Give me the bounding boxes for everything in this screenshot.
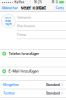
button[interactable]: Nachname (17, 22, 66, 30)
button[interactable]: Fertig (54, 4, 66, 11)
button[interactable]: Textton (0, 89, 66, 97)
button[interactable]: E-Mail hinzufügen (0, 67, 66, 75)
staticText: Vorname (17, 15, 31, 20)
staticText: E-Mail hinzufügen (8, 69, 38, 73)
staticText: hinzu- (5, 19, 11, 23)
button[interactable]: Foto hinzufügen (1, 14, 15, 28)
staticText: Abbrechen (1, 6, 18, 10)
staticText: Nachname (17, 24, 35, 28)
button[interactable]: Klingelton (0, 81, 66, 89)
button[interactable]: Vorname (17, 13, 66, 22)
staticText: Foto (5, 16, 11, 19)
staticText: Firma (17, 32, 26, 37)
staticText: •••••∘ Kaffee (1, 0, 24, 4)
staticText: Textton (3, 91, 15, 95)
staticText: 74 % (51, 0, 58, 4)
button[interactable]: Telefon hinzufügen (0, 50, 66, 58)
staticText: 16:25 (34, 0, 42, 4)
button[interactable]: Firma (17, 30, 66, 39)
button[interactable]: Abbrechen (0, 4, 20, 11)
staticText: Klingelton (3, 83, 19, 87)
staticText: Telefon hinzufügen (8, 51, 39, 56)
staticText: fügen (5, 23, 11, 26)
staticText: Neuer Kontakt (20, 5, 45, 10)
staticText: Fertig (55, 6, 64, 10)
staticText: Standard (46, 83, 60, 87)
staticText: Standard (46, 91, 60, 95)
